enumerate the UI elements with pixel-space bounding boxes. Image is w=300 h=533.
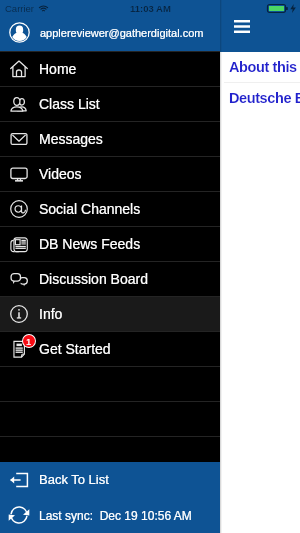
- button[interactable]: Messages: [0, 121, 220, 156]
- button[interactable]: Back To List: [0, 462, 220, 497]
- button[interactable]: Home: [0, 51, 220, 86]
- button[interactable]: DB News Feeds: [0, 226, 220, 261]
- staticText: 11:03 AM: [130, 3, 171, 14]
- button[interactable]: Menu: [228, 12, 256, 40]
- staticText: 1: [26, 336, 32, 347]
- button[interactable]: applereviewer@gatherdigital.com: [0, 14, 220, 51]
- button[interactable]: Last sync: Dec 19 10:56 AM: [0, 497, 220, 533]
- button[interactable]: 1: [0, 331, 220, 366]
- staticText: Home: [39, 61, 77, 77]
- staticText: applereviewer@gatherdigital.com: [40, 27, 204, 39]
- staticText: Info: [39, 306, 63, 322]
- staticText: Social Channels: [39, 201, 141, 217]
- button[interactable]: Class List: [0, 86, 220, 121]
- staticText: Discussion Board: [39, 271, 148, 287]
- staticText: Get Started: [39, 341, 111, 357]
- staticText: DB News Feeds: [39, 236, 141, 252]
- button[interactable]: Social Channels: [0, 191, 220, 226]
- staticText: About this app: [229, 59, 300, 75]
- staticText: Class List: [39, 96, 100, 112]
- staticText: Back To List: [39, 472, 109, 487]
- button[interactable]: Videos: [0, 156, 220, 191]
- staticText: Carrier: [5, 3, 35, 14]
- staticText: Deutsche Bank: [229, 90, 300, 106]
- button[interactable]: Info: [0, 296, 220, 331]
- button[interactable]: About this app: [0, 52, 300, 82]
- button[interactable]: Deutsche Bank: [0, 83, 300, 113]
- staticText: Last sync: Dec 19 10:56 AM: [39, 509, 192, 522]
- staticText: Videos: [39, 166, 82, 182]
- staticText: Messages: [39, 131, 103, 147]
- button[interactable]: Discussion Board: [0, 261, 220, 296]
